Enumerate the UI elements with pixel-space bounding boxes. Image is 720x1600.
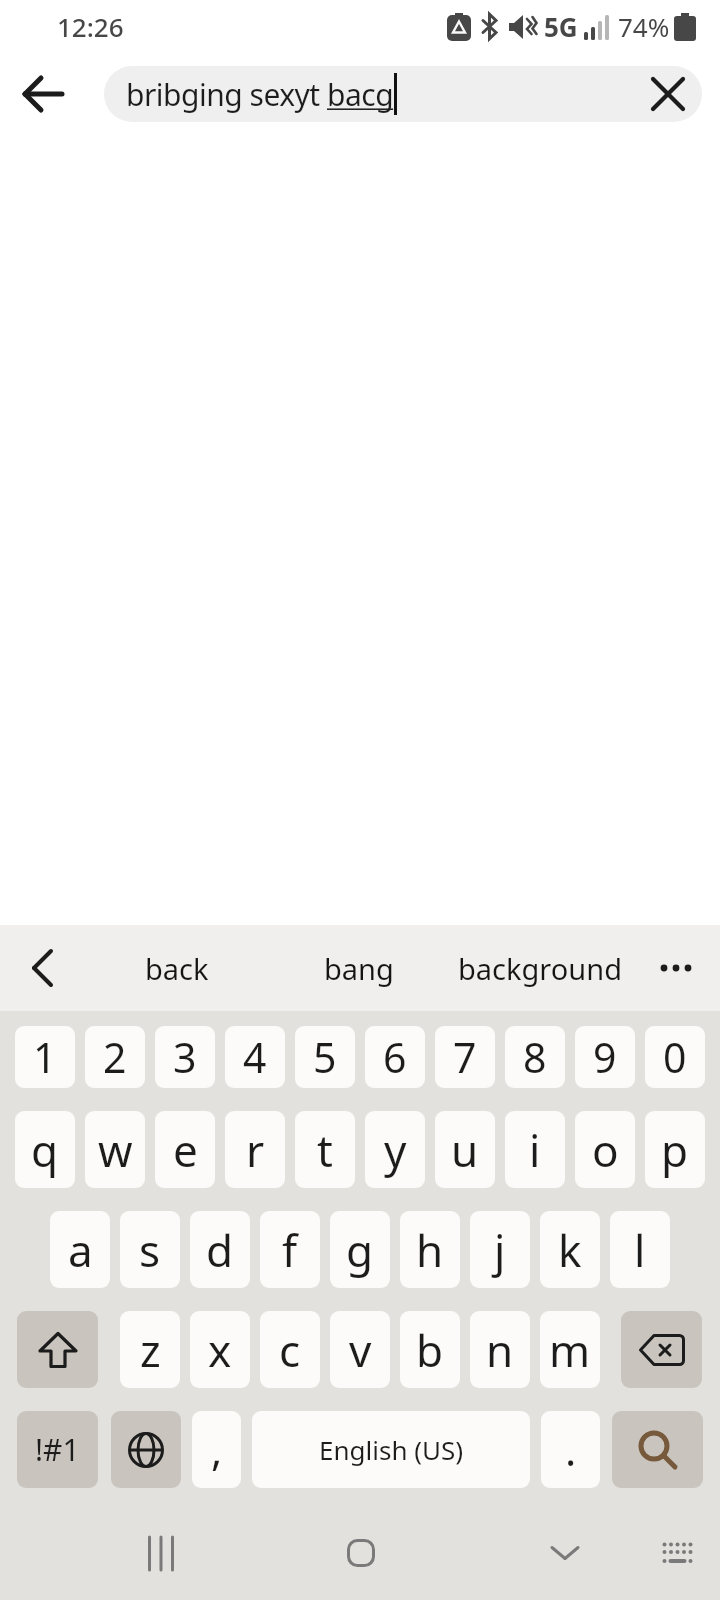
button[interactable]: , (192, 1411, 241, 1488)
button[interactable]: v (330, 1311, 390, 1388)
staticText: b (416, 1320, 444, 1380)
button[interactable]: English (US) (252, 1411, 530, 1488)
button[interactable]: !#1 (17, 1411, 98, 1488)
button[interactable]: q (15, 1111, 75, 1188)
button[interactable] (621, 1311, 702, 1388)
button[interactable]: 9 (575, 1026, 635, 1088)
button[interactable]: 2 (85, 1026, 145, 1088)
button[interactable] (632, 925, 720, 1011)
button[interactable]: 4 (225, 1026, 285, 1088)
button[interactable] (638, 66, 698, 122)
button[interactable]: 1 (15, 1026, 75, 1088)
button[interactable] (650, 1521, 704, 1585)
button[interactable]: h (400, 1211, 460, 1288)
button[interactable]: a (50, 1211, 110, 1288)
staticText: 9 (593, 1029, 617, 1085)
staticText: e (173, 1120, 198, 1180)
button[interactable] (612, 1411, 703, 1488)
staticText: m (549, 1320, 591, 1380)
staticText: 7 (453, 1029, 477, 1085)
button[interactable] (134, 1521, 188, 1585)
button[interactable]: 8 (505, 1026, 565, 1088)
staticText: background (458, 949, 622, 988)
button[interactable]: f (260, 1211, 320, 1288)
staticText: u (451, 1120, 479, 1180)
button[interactable]: p (645, 1111, 705, 1188)
staticText: 8 (523, 1029, 547, 1085)
staticText: 74% (618, 9, 670, 44)
staticText: y (384, 1120, 407, 1180)
button[interactable]: l (610, 1211, 670, 1288)
staticText: h (416, 1220, 444, 1280)
staticText: n (486, 1320, 514, 1380)
button[interactable]: bribging sexyt bacg (104, 66, 702, 122)
staticText: x (208, 1320, 232, 1380)
button[interactable] (17, 1311, 98, 1388)
staticText: a (68, 1220, 93, 1280)
staticText: 2 (103, 1029, 127, 1085)
button[interactable] (0, 52, 86, 135)
button[interactable] (538, 1521, 592, 1585)
staticText: i (529, 1120, 541, 1180)
staticText: 0 (663, 1029, 687, 1085)
button[interactable]: 6 (365, 1026, 425, 1088)
button[interactable]: d (190, 1211, 250, 1288)
staticText: !#1 (35, 1429, 80, 1470)
button[interactable]: e (155, 1111, 215, 1188)
staticText: back (145, 949, 209, 988)
button[interactable]: 3 (155, 1026, 215, 1088)
button[interactable]: bang (270, 925, 448, 1011)
button[interactable]: u (435, 1111, 495, 1188)
button[interactable]: 5 (295, 1026, 355, 1088)
button[interactable]: 7 (435, 1026, 495, 1088)
staticText: j (494, 1220, 506, 1280)
button[interactable]: j (470, 1211, 530, 1288)
button[interactable]: back (84, 925, 270, 1011)
staticText: v (349, 1320, 372, 1380)
staticText: c (279, 1320, 301, 1380)
button[interactable]: i (505, 1111, 565, 1188)
button[interactable]: z (120, 1311, 180, 1388)
staticText: 1 (33, 1029, 57, 1085)
button[interactable]: . (541, 1411, 600, 1488)
button[interactable]: background (448, 925, 632, 1011)
staticText: bribging sexyt bacg (126, 74, 394, 115)
staticText: bang (324, 949, 394, 988)
button[interactable]: w (85, 1111, 145, 1188)
staticText: 4 (243, 1029, 267, 1085)
button[interactable]: t (295, 1111, 355, 1188)
staticText: w (98, 1120, 133, 1180)
button[interactable] (111, 1411, 181, 1488)
button[interactable]: g (330, 1211, 390, 1288)
staticText: . (565, 1421, 577, 1478)
staticText: d (206, 1220, 234, 1280)
staticText: 5 (313, 1029, 337, 1085)
staticText: l (634, 1220, 646, 1280)
button[interactable]: 0 (645, 1026, 705, 1088)
button[interactable]: y (365, 1111, 425, 1188)
button[interactable]: k (540, 1211, 600, 1288)
staticText: r (246, 1120, 265, 1180)
button[interactable]: b (400, 1311, 460, 1388)
staticText: s (139, 1220, 161, 1280)
staticText: g (346, 1220, 374, 1280)
staticText: 6 (383, 1029, 407, 1085)
staticText: k (558, 1220, 582, 1280)
button[interactable]: r (225, 1111, 285, 1188)
button[interactable] (0, 925, 84, 1011)
staticText: z (140, 1320, 161, 1380)
staticText: t (317, 1120, 333, 1180)
button[interactable] (334, 1521, 388, 1585)
staticText: q (31, 1120, 59, 1180)
staticText: 12:26 (57, 9, 124, 44)
button[interactable]: c (260, 1311, 320, 1388)
staticText: 5G (544, 9, 578, 44)
staticText: , (211, 1421, 223, 1478)
staticText: o (592, 1120, 619, 1180)
button[interactable]: x (190, 1311, 250, 1388)
button[interactable]: o (575, 1111, 635, 1188)
button[interactable]: m (540, 1311, 600, 1388)
button[interactable]: n (470, 1311, 530, 1388)
button[interactable]: s (120, 1211, 180, 1288)
staticText: f (282, 1220, 298, 1280)
